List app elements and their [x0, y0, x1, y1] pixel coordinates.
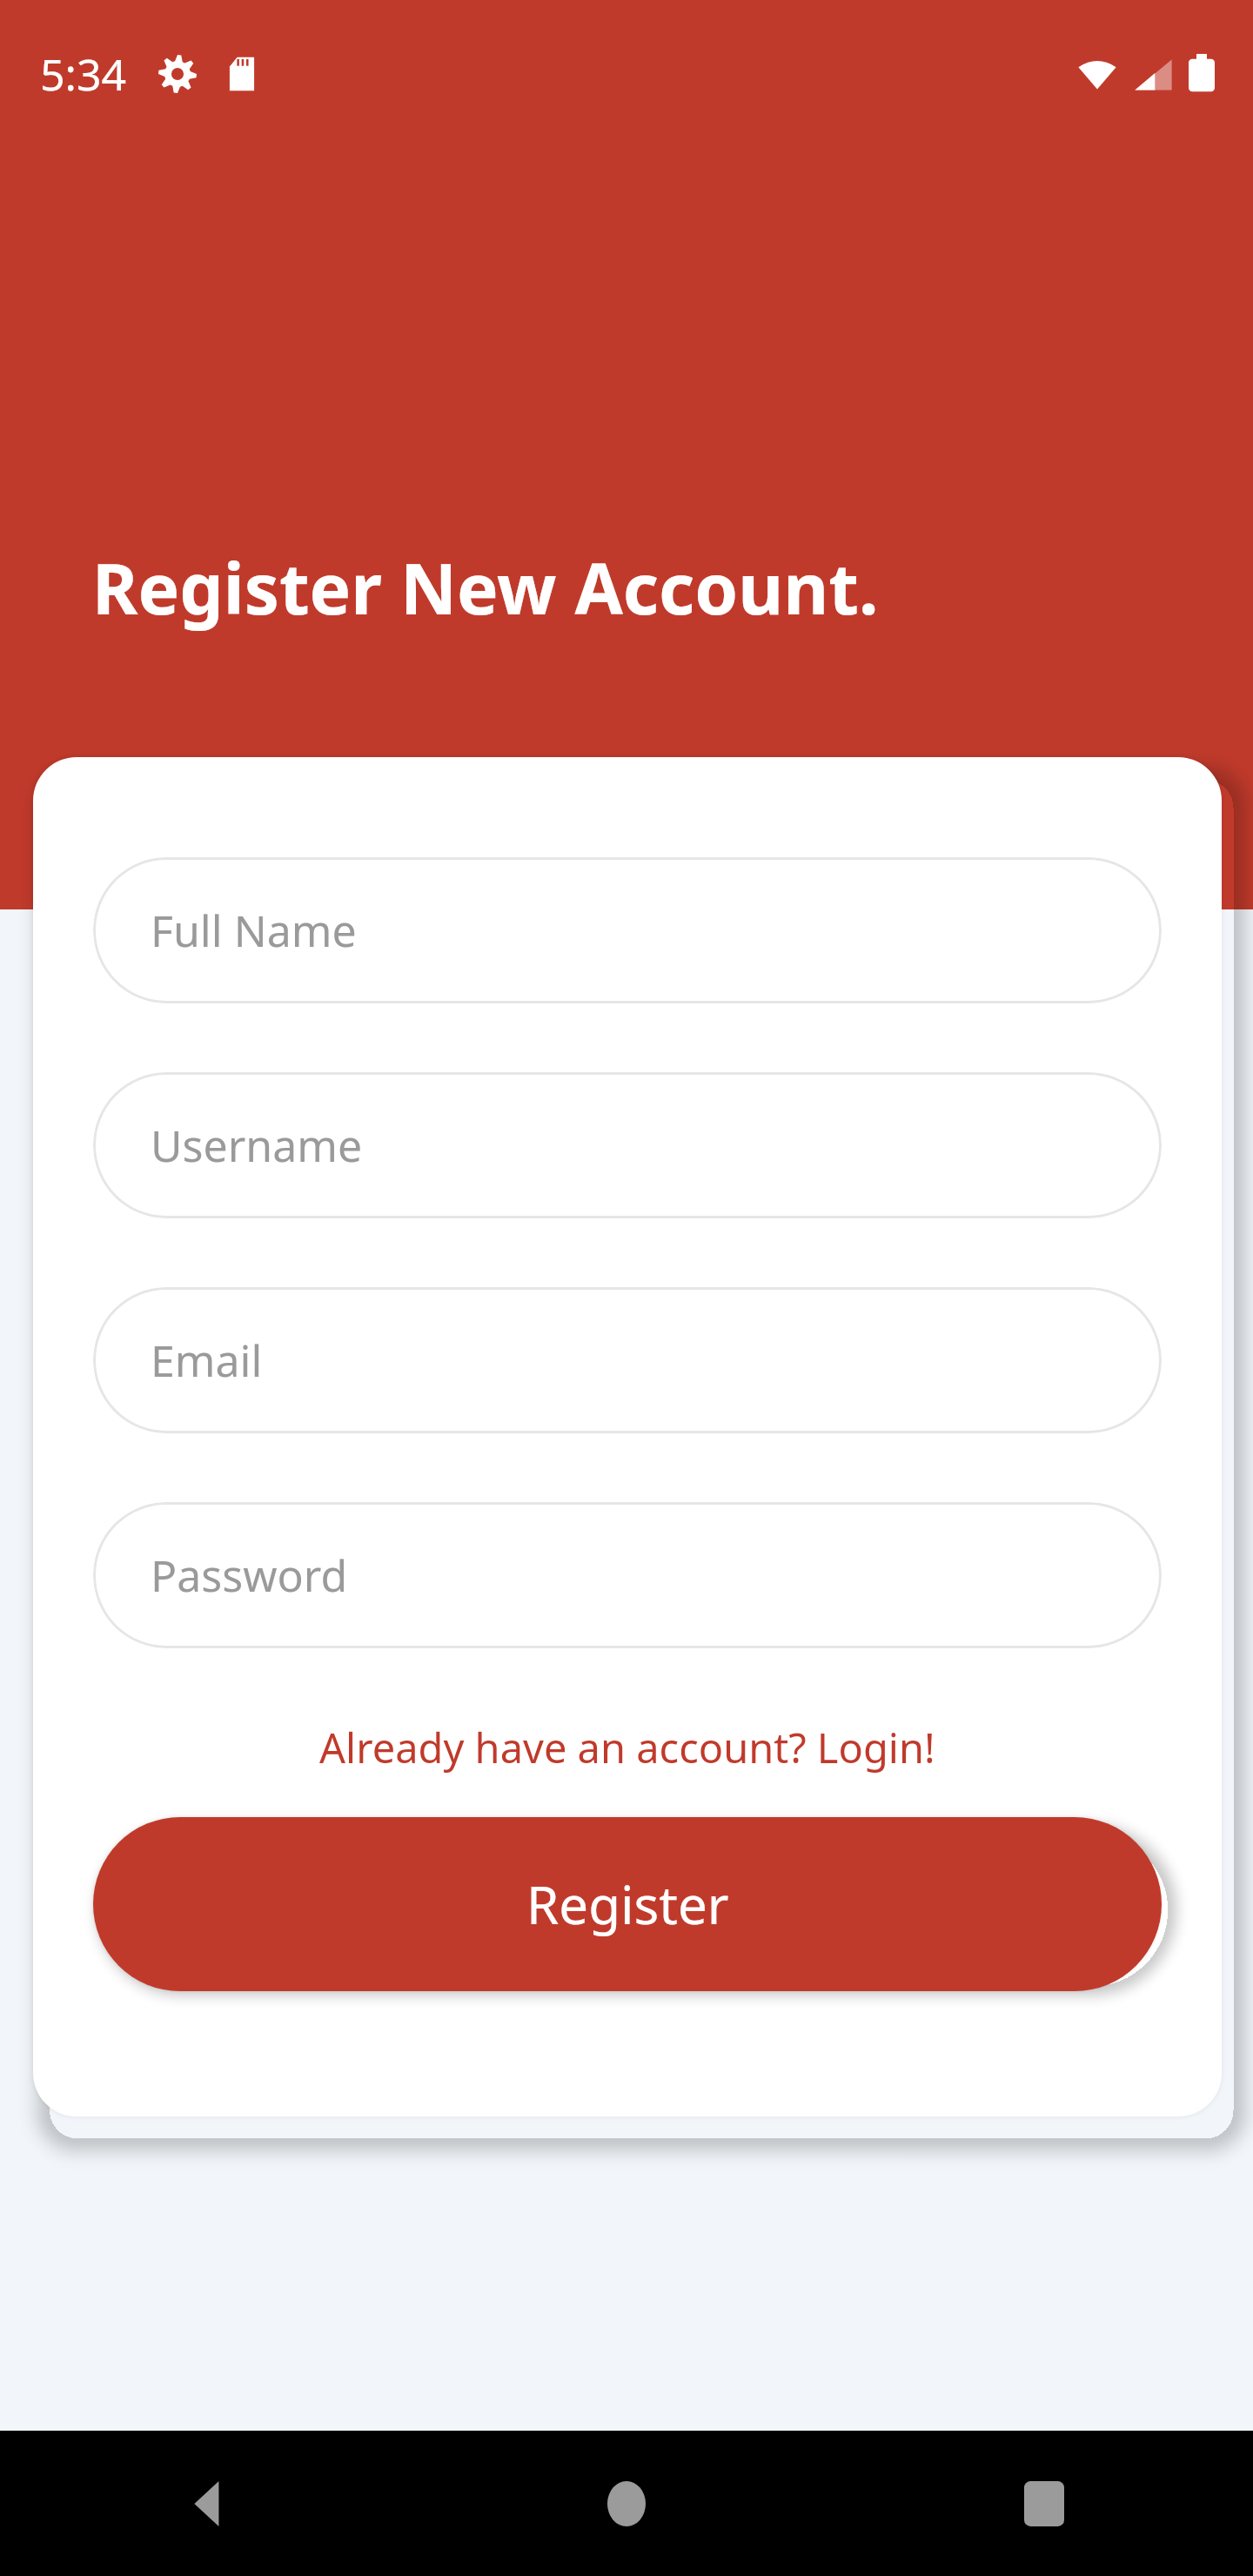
button[interactable]: Back — [0, 2431, 418, 2576]
staticText: Full Name — [151, 901, 357, 960]
button[interactable]: Password — [93, 1502, 1162, 1648]
button[interactable]: Register — [93, 1817, 1162, 1991]
button[interactable]: Home — [418, 2431, 835, 2576]
staticText: Register New Account. — [92, 540, 879, 634]
staticText: 5:34 — [40, 44, 127, 104]
button[interactable]: Username — [93, 1072, 1162, 1218]
button[interactable]: Recent apps — [835, 2431, 1253, 2576]
staticText: Register — [526, 1868, 729, 1940]
staticText: Password — [151, 1546, 348, 1605]
button[interactable]: Email — [93, 1287, 1162, 1433]
button[interactable]: Already have an account? Login! — [33, 1720, 1222, 1775]
staticText: Email — [151, 1331, 263, 1390]
staticText: Username — [151, 1116, 363, 1175]
button[interactable]: Full Name — [93, 857, 1162, 1003]
staticText: Already have an account? Login! — [319, 1720, 935, 1775]
